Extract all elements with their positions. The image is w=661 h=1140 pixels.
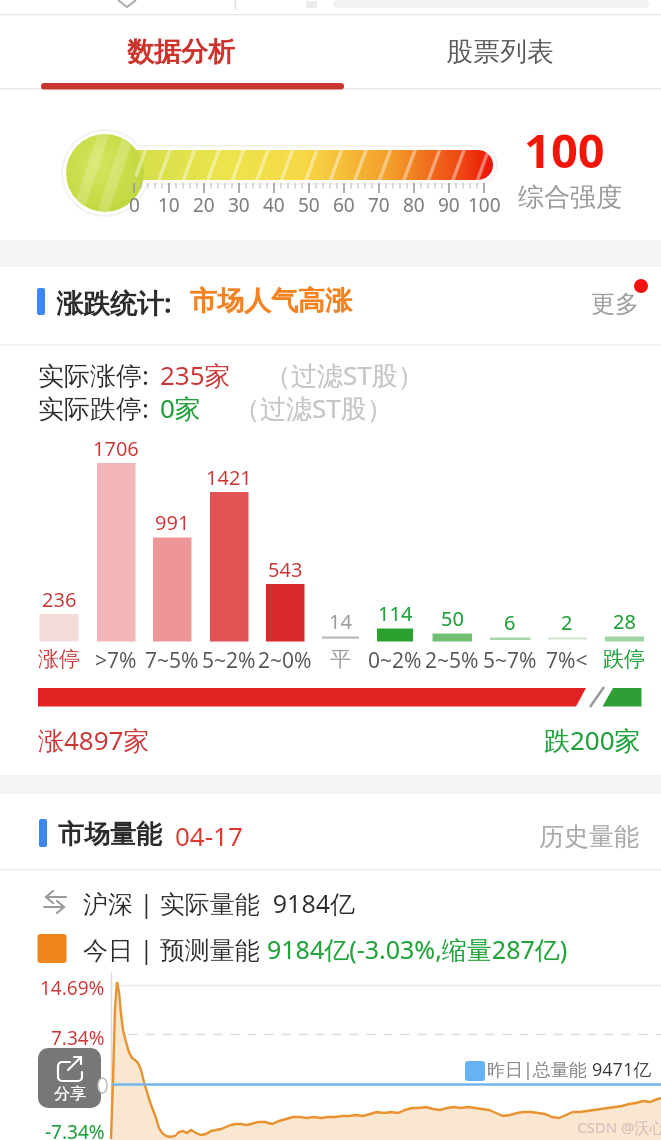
staticText: 平 <box>330 646 351 672</box>
staticText: 股票列表 <box>446 35 554 69</box>
staticText: 2~5% <box>425 646 479 675</box>
staticText: 40 <box>263 192 285 218</box>
staticText: 昨日|总量能 <box>487 1057 592 1082</box>
button[interactable]: 分享 <box>38 1048 101 1108</box>
staticText: （过滤ST股） <box>234 390 393 426</box>
staticText: 0~2% <box>368 646 422 675</box>
staticText: 2 <box>561 609 573 636</box>
staticText: 7%< <box>546 646 588 675</box>
staticText: 数据分析 <box>127 35 235 69</box>
staticText: 跌200家 <box>544 722 641 758</box>
staticText: 市场量能 <box>58 818 162 851</box>
staticText: 50 <box>441 605 464 632</box>
staticText: 04-17 <box>175 818 243 853</box>
staticText: 分享 <box>54 1084 86 1104</box>
staticText: 991 <box>155 509 190 536</box>
staticText: 543 <box>268 556 303 583</box>
staticText: 236 <box>42 586 77 613</box>
staticText: 9184亿(-3.03%,缩量287亿) <box>267 932 568 966</box>
staticText: 沪深 | 实际量能 9184亿 <box>83 886 355 920</box>
staticText: 80 <box>403 192 425 218</box>
staticText: CSDN @沃心 <box>577 1117 661 1137</box>
staticText: 1421 <box>206 464 252 491</box>
staticText: 0 <box>129 192 140 218</box>
staticText: 历史量能 <box>539 821 639 852</box>
button[interactable]: 历史量能 <box>509 820 639 852</box>
staticText: 6 <box>504 609 516 636</box>
staticText: 实际跌停: <box>38 390 149 426</box>
staticText: >7% <box>95 646 137 675</box>
staticText: 1706 <box>93 435 139 462</box>
staticText: 90 <box>438 192 460 218</box>
staticText: 100 <box>468 192 501 218</box>
staticText: 10 <box>158 192 180 218</box>
staticText: 涨跌统计: <box>56 284 172 321</box>
staticText: 实际涨停: <box>38 357 149 393</box>
staticText: 跌停 <box>603 646 645 672</box>
staticText: 70 <box>368 192 390 218</box>
staticText: 20 <box>193 192 215 218</box>
staticText: 2~0% <box>258 646 312 675</box>
staticText: 14.69% <box>40 975 105 1001</box>
staticText: 7~5% <box>145 646 199 675</box>
button[interactable]: 数据分析 <box>26 16 336 88</box>
staticText: 14 <box>329 608 352 635</box>
staticText: 100 <box>524 118 605 182</box>
staticText: 综合强度 <box>518 181 622 214</box>
button[interactable]: 更多 <box>569 288 639 320</box>
staticText: 涨停 <box>38 646 80 672</box>
staticText: 5~7% <box>483 646 537 675</box>
button[interactable]: 股票列表 <box>345 16 655 88</box>
staticText: 114 <box>378 600 413 627</box>
staticText: 更多 <box>591 289 639 319</box>
staticText: （过滤ST股） <box>265 357 424 393</box>
staticText: 9471亿 <box>592 1057 652 1082</box>
staticText: 7.34% <box>51 1025 105 1051</box>
staticText: 0家 <box>160 390 201 426</box>
staticText: 市场人气高涨 <box>190 284 352 318</box>
staticText: 50 <box>298 192 320 218</box>
staticText: 涨4897家 <box>38 722 150 758</box>
staticText: -7.34% <box>45 1119 105 1140</box>
staticText: 28 <box>613 608 636 635</box>
staticText: 235家 <box>160 357 231 393</box>
staticText: 60 <box>333 192 355 218</box>
staticText: 今日 | 预测量能 <box>83 932 267 966</box>
staticText: 5~2% <box>202 646 256 675</box>
staticText: 30 <box>228 192 250 218</box>
